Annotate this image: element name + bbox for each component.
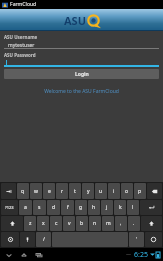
button[interactable]: q [17,183,29,199]
staticText: m [106,220,111,227]
staticText: e [48,188,51,195]
button[interactable]: v [63,216,75,231]
staticText: ASU Username [4,34,38,40]
staticText: a [24,204,27,211]
staticText: l [132,204,134,211]
staticText: q [21,188,25,195]
button[interactable]: y [82,183,94,199]
staticText: t [74,188,76,195]
button[interactable]: x [37,216,49,231]
staticText: h [92,204,96,211]
staticText: Welcome to the ASU FarmCloud [4,88,159,95]
staticText: ASU Password [4,52,36,58]
button[interactable]: Enter [140,200,162,215]
staticText: Login [75,71,89,78]
button[interactable]: u [95,183,107,199]
staticText: ?123 [5,205,14,210]
staticText: d [52,204,56,211]
staticText: 6:25 [134,250,148,260]
button[interactable]: mytestuser [4,41,159,49]
staticText: p [138,188,142,195]
button[interactable]: Backspace [147,183,162,199]
staticText: . [133,220,135,227]
staticText: mytestuser [8,42,35,49]
button[interactable]: ' [129,232,144,247]
button[interactable]: Keyboard settings [1,232,19,247]
button[interactable]: i [108,183,120,199]
button[interactable]: z [24,216,36,231]
button[interactable]: d [47,200,60,215]
button[interactable]: a [19,200,32,215]
staticText: ' [136,236,138,243]
staticText: w [34,188,38,195]
staticText: z [29,220,32,227]
staticText: FarmCloud [10,1,37,8]
staticText: i [113,188,115,195]
button[interactable]: Back [3,249,14,260]
button[interactable]: r [56,183,68,199]
staticText: x [42,220,45,227]
staticText: f [67,204,69,211]
staticText: v [68,220,71,227]
button[interactable]: Home [18,249,29,260]
button[interactable]: o [121,183,133,199]
staticText: , [120,220,122,227]
button[interactable]: Voice input [20,232,35,247]
staticText: j [106,204,108,211]
button[interactable]: c [50,216,62,231]
button[interactable]: e [43,183,55,199]
button[interactable]: j [101,200,113,215]
staticText: n [93,220,97,227]
button[interactable]: Emoji [145,232,162,247]
staticText: s [38,204,41,211]
button[interactable]: Login [4,69,159,79]
staticText: r [61,188,64,195]
staticText: b [80,220,84,227]
button[interactable]: , [115,216,127,231]
button[interactable]: m [102,216,114,231]
staticText: / [43,236,45,243]
button[interactable]: Recent apps [33,249,44,260]
staticText: k [119,204,122,211]
button[interactable]: h [88,200,100,215]
staticText: g [79,204,83,211]
staticText: y [87,188,90,195]
staticText: u [99,188,103,195]
staticText: ASU [64,13,86,28]
staticText: — [126,251,132,258]
button[interactable]: w [30,183,42,199]
button[interactable]: / [36,232,51,247]
button[interactable]: . [128,216,140,231]
staticText: c [55,220,58,227]
button[interactable]: Shift [141,216,162,231]
button[interactable]: s [33,200,46,215]
button[interactable] [4,59,159,67]
button[interactable]: n [89,216,101,231]
button[interactable]: Tab [1,183,16,199]
button[interactable]: ?123 [1,200,18,215]
button[interactable]: Shift [1,216,23,231]
button[interactable]: k [114,200,126,215]
staticText: o [125,188,129,195]
button[interactable]: f [61,200,74,215]
button[interactable]: l [127,200,139,215]
button[interactable]: t [69,183,81,199]
button[interactable]: p [134,183,146,199]
button[interactable]: g [75,200,87,215]
button[interactable]: b [76,216,88,231]
